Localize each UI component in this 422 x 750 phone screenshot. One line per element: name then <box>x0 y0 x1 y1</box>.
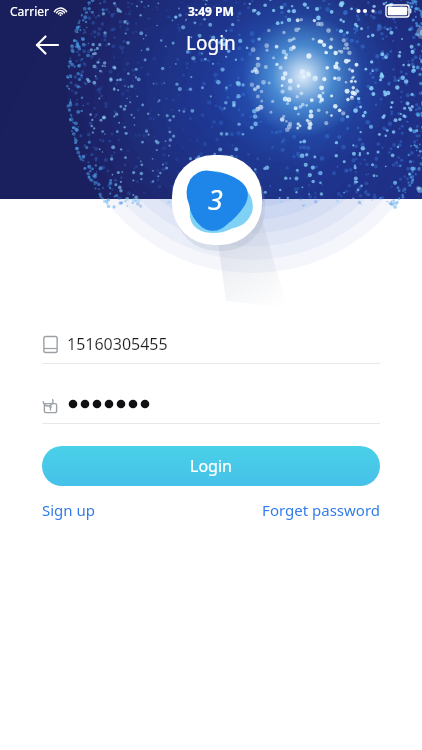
button[interactable]: Login <box>42 446 380 486</box>
staticText: Forget password <box>262 500 380 520</box>
staticText: 3 <box>208 181 223 218</box>
button[interactable]: Sign up <box>42 497 95 523</box>
staticText: Login <box>186 30 236 56</box>
button[interactable]: Forget password <box>262 497 380 523</box>
button[interactable]: Back <box>30 28 64 62</box>
staticText: 3:49 PM <box>188 3 234 19</box>
staticText: Login <box>190 455 232 477</box>
staticText: 15160305455 <box>67 333 168 355</box>
button[interactable]: 15160305455 <box>42 325 380 363</box>
staticText: Sign up <box>42 500 95 520</box>
staticText: Carrier <box>10 3 50 19</box>
button[interactable] <box>42 385 380 423</box>
